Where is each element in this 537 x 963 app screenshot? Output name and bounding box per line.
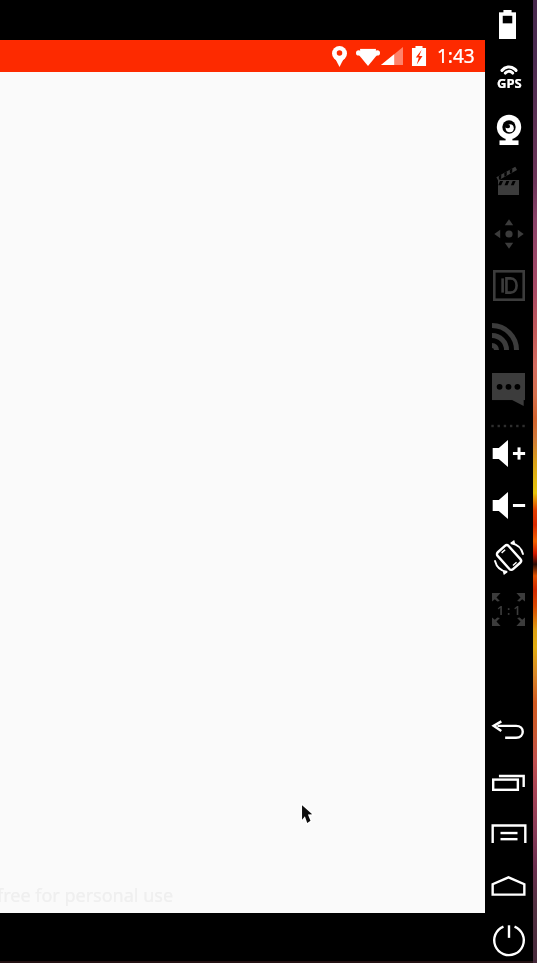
button[interactable]: Back [493, 721, 525, 739]
button[interactable]: Zoom 1 to 1 [492, 593, 525, 626]
button[interactable]: GPS [492, 65, 526, 92]
button[interactable]: Rotate [493, 542, 525, 573]
staticText: 1 : 1 [497, 602, 521, 618]
button[interactable]: Home [492, 877, 525, 895]
button[interactable]: Overview [492, 774, 525, 791]
button[interactable]: Power [493, 922, 525, 955]
button[interactable]: Messages [492, 373, 525, 406]
button[interactable]: More [491, 423, 523, 429]
staticText: free for personal use [0, 883, 174, 908]
button[interactable]: Battery [499, 10, 516, 39]
button[interactable]: D-pad [493, 218, 525, 250]
button[interactable]: Volume down [492, 492, 526, 519]
staticText: 1:43 [437, 43, 475, 69]
button[interactable]: Record [498, 165, 519, 195]
staticText: GPS [497, 74, 522, 92]
button[interactable]: ID [493, 270, 525, 301]
button[interactable]: Volume up [492, 440, 526, 467]
button[interactable]: Camera [493, 114, 525, 147]
button[interactable]: Cellular [492, 321, 521, 350]
button[interactable]: Menu [492, 825, 526, 843]
